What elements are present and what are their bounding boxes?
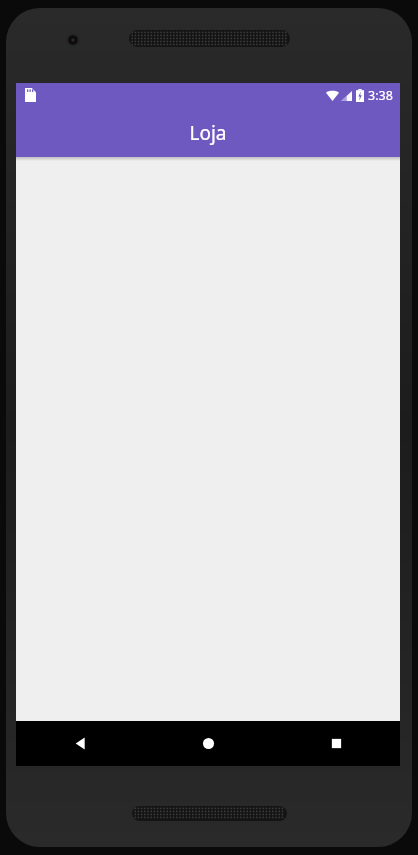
button[interactable]: Back bbox=[16, 721, 144, 766]
button[interactable]: Loja bbox=[16, 108, 400, 157]
staticText: Loja bbox=[189, 120, 227, 146]
button[interactable]: Recent apps bbox=[272, 721, 400, 766]
button[interactable]: Home bbox=[144, 721, 272, 766]
staticText: 3:38 bbox=[368, 87, 393, 104]
